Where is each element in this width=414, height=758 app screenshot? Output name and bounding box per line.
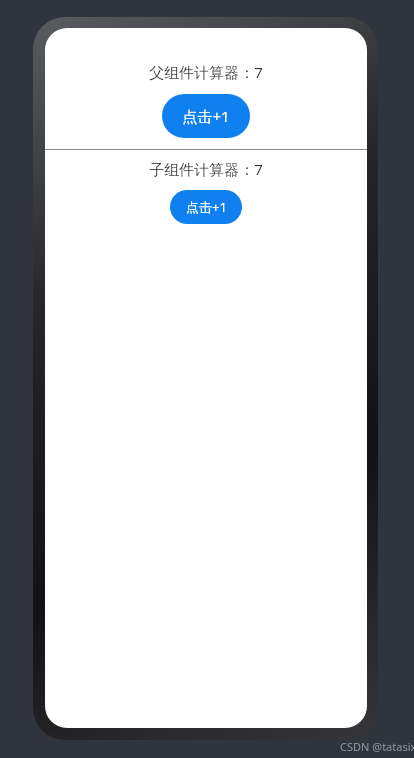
button[interactable]: 点击+1 bbox=[162, 94, 250, 138]
staticText: 父组件计算器：7 bbox=[149, 62, 263, 82]
staticText: CSDN @tatasix bbox=[340, 739, 414, 754]
button[interactable]: 点击+1 bbox=[170, 190, 242, 224]
staticText: 点击+1 bbox=[182, 106, 230, 126]
staticText: 子组件计算器：7 bbox=[149, 159, 263, 179]
staticText: 点击+1 bbox=[186, 198, 227, 216]
